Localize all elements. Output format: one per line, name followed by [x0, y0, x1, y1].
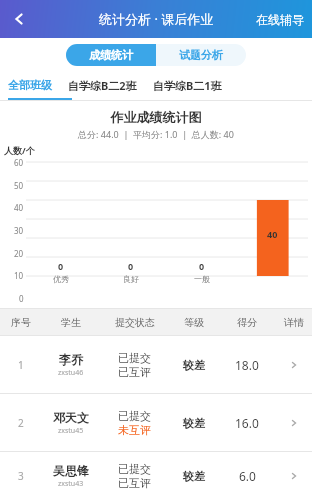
- staticText: 较差: [183, 358, 205, 372]
- staticText: 已提交: [118, 351, 151, 365]
- staticText: 详情: [284, 316, 304, 329]
- button[interactable]: 在线辅导: [256, 12, 304, 27]
- staticText: 自学综B二1班: [153, 78, 222, 93]
- staticText: 全部班级: [8, 78, 52, 92]
- staticText: 得分: [237, 316, 257, 329]
- staticText: 20: [14, 248, 24, 259]
- button[interactable]: 成绩统计: [66, 44, 156, 66]
- button[interactable]: Back: [0, 0, 38, 38]
- staticText: 良好: [123, 274, 139, 284]
- staticText: 18.0: [235, 357, 259, 373]
- button[interactable]: 2: [0, 394, 312, 451]
- staticText: 邓天文: [53, 410, 89, 425]
- staticText: 已提交: [118, 462, 151, 476]
- staticText: zxstu43: [58, 479, 84, 489]
- staticText: 6.0: [239, 468, 256, 484]
- staticText: 60: [14, 157, 24, 168]
- staticText: 试题分析: [179, 48, 223, 62]
- staticText: 作业成绩统计图: [0, 109, 312, 125]
- button[interactable]: 自学综B二2班: [68, 78, 137, 93]
- staticText: 吴思锋: [53, 463, 89, 478]
- staticText: 10: [14, 270, 24, 281]
- staticText: 人数/个: [4, 144, 35, 156]
- staticText: 40: [267, 228, 278, 240]
- button[interactable]: 全部班级: [8, 78, 52, 92]
- staticText: 提交状态: [115, 316, 155, 329]
- staticText: 0: [199, 260, 205, 272]
- staticText: zxstu45: [58, 426, 84, 436]
- button[interactable]: 自学综B二1班: [153, 78, 222, 93]
- button[interactable]: 3: [0, 452, 312, 500]
- staticText: 已互评: [118, 476, 151, 490]
- staticText: 40: [14, 202, 24, 213]
- staticText: 较差: [183, 469, 205, 483]
- staticText: 在线辅导: [256, 12, 304, 27]
- staticText: 未互评: [118, 423, 151, 437]
- staticText: zxstu46: [58, 368, 84, 378]
- button[interactable]: 试题分析: [156, 44, 246, 66]
- staticText: 优秀: [53, 274, 69, 284]
- staticText: 学生: [61, 316, 81, 329]
- staticText: 3: [18, 469, 24, 483]
- staticText: 序号: [11, 316, 31, 329]
- staticText: 0: [128, 260, 134, 272]
- staticText: 统计分析 · 课后作业: [99, 10, 214, 28]
- staticText: 成绩统计: [89, 48, 133, 62]
- staticText: 较差: [183, 416, 205, 430]
- staticText: 一般: [194, 274, 210, 284]
- staticText: 总分: 44.0 | 平均分: 1.0 | 总人数: 40: [0, 128, 312, 140]
- staticText: 50: [14, 180, 24, 191]
- staticText: 0: [58, 260, 64, 272]
- staticText: 已互评: [118, 365, 151, 379]
- staticText: 1: [18, 358, 24, 372]
- staticText: 2: [18, 416, 24, 430]
- staticText: 自学综B二2班: [68, 78, 137, 93]
- staticText: 16.0: [235, 415, 259, 431]
- button[interactable]: 1: [0, 336, 312, 393]
- staticText: 等级: [184, 316, 204, 329]
- staticText: 0: [19, 293, 24, 304]
- staticText: 已提交: [118, 409, 151, 423]
- staticText: 30: [14, 225, 24, 236]
- staticText: 李乔: [59, 352, 83, 367]
